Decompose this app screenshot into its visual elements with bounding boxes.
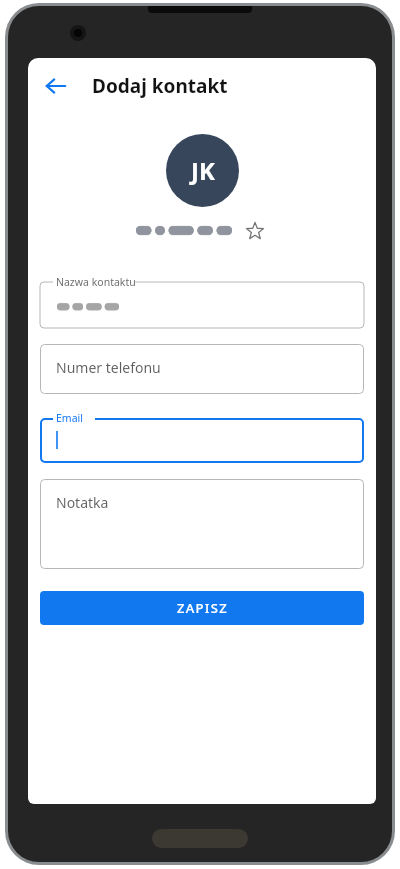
staticText: ZAPISZ	[177, 599, 228, 617]
staticText: Numer telefonu	[56, 358, 161, 377]
button[interactable]: Nazwa kontaktu	[40, 274, 364, 328]
button[interactable]: ZAPISZ	[40, 591, 364, 625]
button[interactable]: Email	[40, 410, 364, 463]
button[interactable]: JK	[40, 114, 364, 266]
staticText: Dodaj kontakt	[92, 73, 228, 99]
staticText: JK	[191, 154, 215, 187]
button[interactable]: Numer telefonu	[40, 344, 364, 394]
staticText: Email	[56, 411, 83, 425]
button[interactable]: Back	[34, 64, 78, 108]
button[interactable]: Favourite	[242, 218, 268, 244]
button[interactable]: Notatka	[40, 479, 364, 569]
staticText: Notatka	[56, 493, 109, 512]
staticText: Nazwa kontaktu	[56, 275, 136, 289]
